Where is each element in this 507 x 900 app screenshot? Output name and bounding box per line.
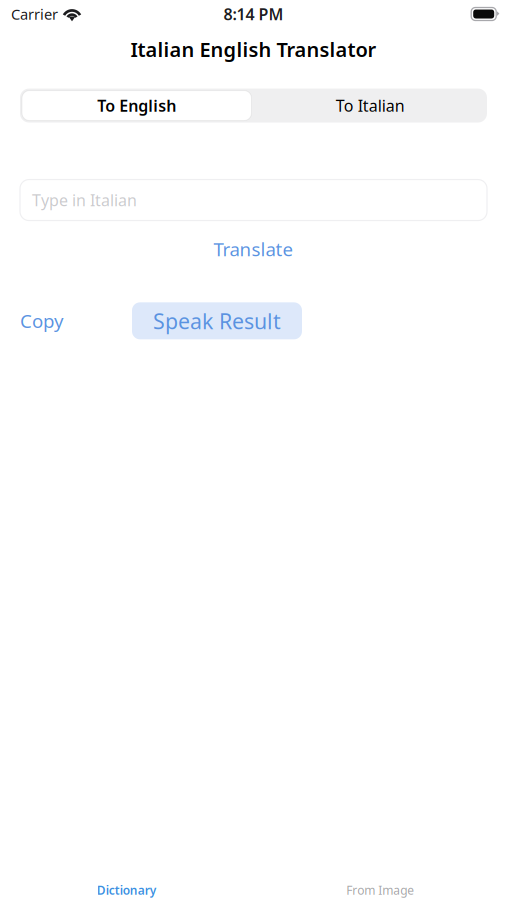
staticText: Carrier: [11, 4, 58, 24]
button[interactable]: Speak Result: [132, 302, 302, 339]
staticText: Speak Result: [153, 307, 281, 335]
button[interactable]: Copy: [20, 308, 64, 333]
button[interactable]: Translate: [213, 237, 293, 261]
button[interactable]: To Italian: [253, 89, 487, 123]
staticText: Dictionary: [97, 882, 157, 898]
staticText: To Italian: [336, 95, 405, 116]
staticText: Translate: [213, 237, 293, 261]
button[interactable]: From Image: [253, 849, 507, 898]
button[interactable]: To English: [20, 89, 253, 123]
staticText: Italian English Translator: [130, 36, 376, 63]
staticText: Copy: [20, 308, 64, 333]
staticText: To English: [97, 95, 176, 116]
staticText: From Image: [346, 882, 414, 898]
button[interactable]: Dictionary: [0, 849, 253, 898]
staticText: 8:14 PM: [223, 3, 283, 25]
staticText: Type in Italian: [32, 189, 137, 211]
